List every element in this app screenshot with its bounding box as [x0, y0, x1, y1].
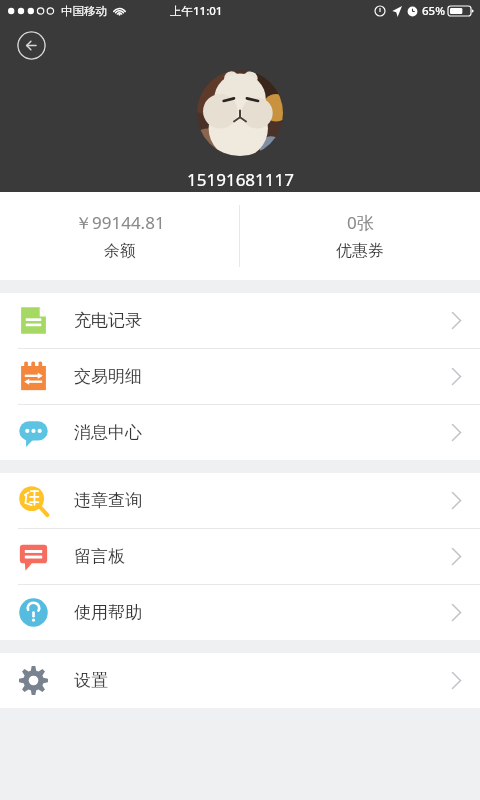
staticText: 违章查询 [74, 490, 142, 511]
staticText: 消息中心 [74, 422, 142, 443]
staticText: 设置 [74, 670, 108, 691]
staticText: 上午11:01 [170, 3, 223, 19]
staticText: 0张 [347, 211, 374, 234]
button[interactable]: 违章查询 [0, 473, 480, 528]
staticText: 余额 [104, 241, 136, 261]
button[interactable]: 使用帮助 [0, 585, 480, 640]
button[interactable]: 消息中心 [0, 405, 480, 460]
button[interactable]: 留言板 [0, 529, 480, 584]
staticText: 65% [422, 3, 445, 19]
staticText: ￥99144.81 [75, 211, 165, 234]
staticText: 优惠券 [336, 241, 384, 261]
button[interactable]: 返回 [17, 31, 46, 60]
button[interactable]: 充电记录 [0, 293, 480, 348]
staticText: 使用帮助 [74, 602, 142, 623]
button[interactable]: ￥99144.81 [0, 203, 239, 269]
button[interactable]: 设置 [0, 653, 480, 708]
button[interactable]: 头像 [197, 70, 283, 156]
staticText: 中国移动 [61, 4, 107, 18]
staticText: 留言板 [74, 546, 125, 567]
staticText: 充电记录 [74, 310, 142, 331]
button[interactable]: 交易明细 [0, 349, 480, 404]
staticText: 交易明细 [74, 366, 142, 387]
button[interactable]: 0张 [240, 203, 480, 269]
staticText: 15191681117 [187, 168, 294, 191]
